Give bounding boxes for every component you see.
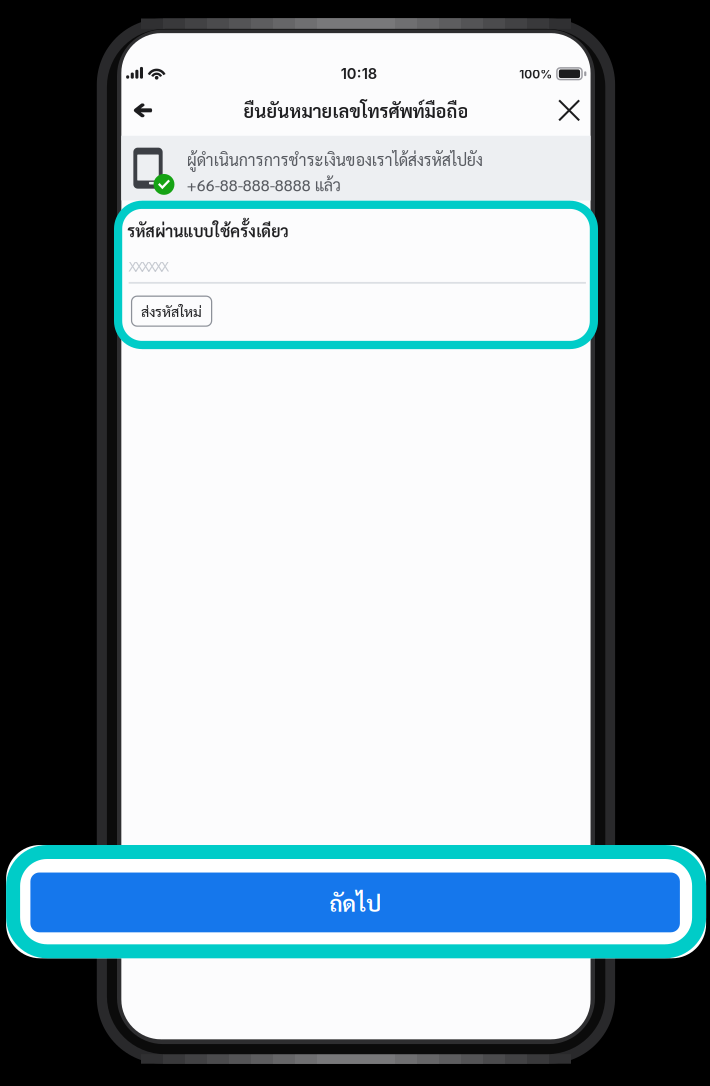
- staticText: +66-88-888-8888 แล้ว: [187, 174, 341, 195]
- staticText: ผู้ดำเนินการการชำระเงินของเราได้ส่งรหัสไ…: [187, 149, 483, 170]
- staticText: 100%: [519, 67, 552, 81]
- button[interactable]: ถัดไป: [0, 0, 649, 60]
- staticText: 10:18: [341, 65, 377, 83]
- staticText: XXXXXX: [128, 259, 170, 274]
- staticText: รหัสผ่านแบบใช้ครั้งเดียว: [127, 220, 288, 241]
- button[interactable]: ส่งรหัสใหม่: [121, 33, 202, 64]
- staticText: ส่งรหัสใหม่: [141, 302, 202, 320]
- button[interactable]: Close: [121, 33, 165, 77]
- button[interactable]: Back: [121, 33, 165, 77]
- staticText: ยืนยันหมายเลขโทรศัพท์มือถือ: [243, 98, 468, 122]
- staticText: ถัดไป: [329, 888, 381, 917]
